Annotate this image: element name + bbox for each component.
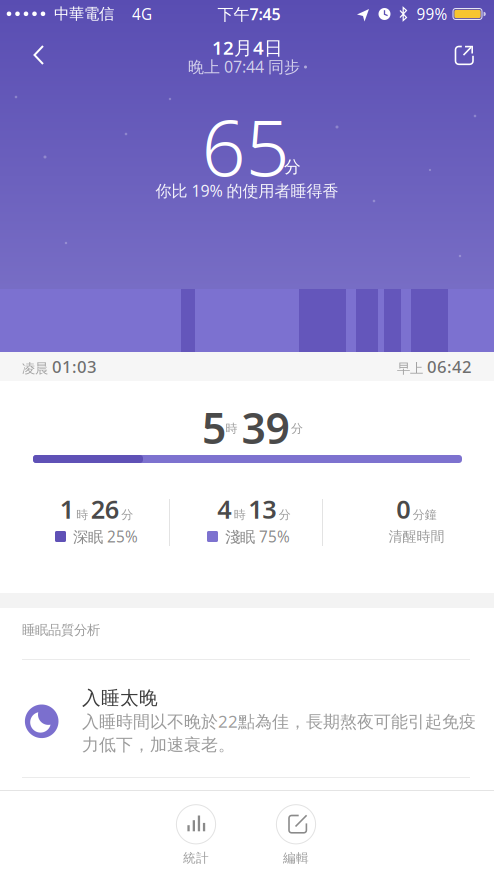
staticText: 06:42	[427, 355, 472, 377]
staticText: 5	[202, 399, 226, 456]
staticText: 深眠 25%	[73, 526, 138, 547]
button[interactable]	[18, 33, 62, 77]
staticText: 4G	[132, 4, 152, 24]
staticText: 分鐘	[413, 507, 437, 522]
staticText: 入睡太晚	[82, 686, 158, 709]
staticText: 分	[291, 421, 303, 436]
staticText: 力低下，加速衰老。	[82, 734, 235, 755]
staticText: 清醒時間	[388, 528, 444, 545]
staticText: 01:03	[52, 355, 97, 377]
button[interactable]: 統計	[166, 796, 226, 866]
staticText: 時	[76, 507, 88, 522]
staticText: 分	[279, 507, 291, 522]
staticText: 12月4日	[212, 35, 283, 60]
button[interactable]: 編輯	[266, 796, 326, 866]
staticText: 凌晨	[22, 360, 48, 377]
staticText: 65	[202, 95, 290, 197]
staticText: 13	[248, 492, 276, 526]
staticText: 睡眠品質分析	[22, 622, 100, 638]
staticText: 1	[60, 492, 74, 526]
staticText: 時	[225, 421, 237, 436]
staticText: 中華電信	[54, 5, 114, 23]
staticText: 0	[396, 492, 410, 526]
staticText: 入睡時間以不晚於22點為佳，長期熬夜可能引起免疫	[82, 710, 476, 732]
staticText: 分	[284, 157, 301, 177]
button[interactable]	[442, 33, 486, 77]
staticText: 你比 19% 的使用者睡得香	[155, 180, 338, 201]
staticText: 編輯	[283, 850, 309, 866]
staticText: 晚上 07:44 同步	[188, 56, 300, 77]
staticText: 淺眠 75%	[225, 526, 290, 547]
staticText: 分	[121, 507, 133, 522]
staticText: 99%	[416, 4, 447, 24]
staticText: 早上	[397, 360, 423, 377]
staticText: 下午7:45	[217, 3, 280, 25]
staticText: 39	[241, 399, 289, 456]
staticText: 26	[91, 492, 119, 526]
staticText: 時	[234, 507, 246, 522]
staticText: 4	[217, 492, 231, 526]
staticText: 統計	[183, 850, 209, 866]
